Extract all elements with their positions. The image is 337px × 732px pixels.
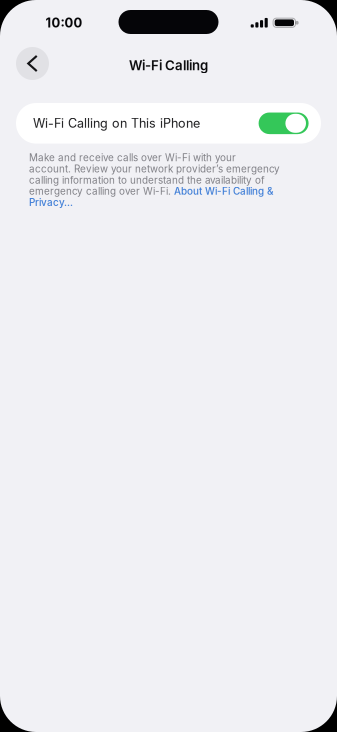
button[interactable]: Wi-Fi Calling on This iPhone (16, 103, 321, 144)
staticText: Wi-Fi Calling (129, 57, 208, 73)
staticText: emergency calling over Wi-Fi. (29, 185, 174, 197)
button[interactable]: About Wi-Fi Calling & (174, 185, 273, 197)
button[interactable]: Privacy… (29, 197, 292, 208)
staticText: Wi-Fi Calling on This iPhone (33, 116, 200, 131)
staticText: account. Review your network provider’s … (29, 163, 280, 175)
staticText: 10:00 (45, 15, 82, 30)
staticText: Make and receive calls over Wi-Fi with y… (29, 152, 236, 163)
button[interactable]: Back (16, 47, 49, 80)
staticText: Privacy… (29, 197, 73, 208)
staticText: calling information to understand the av… (29, 174, 265, 186)
staticText: About Wi-Fi Calling & (174, 185, 273, 197)
